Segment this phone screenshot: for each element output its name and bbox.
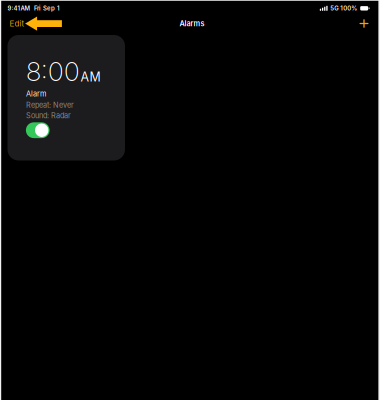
staticText: Alarms [179, 19, 204, 28]
staticText: 5G [330, 5, 338, 12]
staticText: 100% [340, 5, 357, 12]
staticText: Fri Sep 1 [34, 5, 60, 12]
staticText: AM [80, 69, 100, 84]
button[interactable]: Add alarm [355, 13, 372, 34]
button[interactable]: Alarm on [26, 120, 50, 138]
staticText: Sound: Radar [26, 111, 71, 120]
staticText: Edit [10, 19, 25, 28]
staticText: Alarm [26, 89, 46, 98]
button[interactable]: 8:00 [7, 35, 125, 160]
button[interactable]: Edit [6, 14, 29, 33]
staticText: Repeat: Never [26, 101, 74, 110]
staticText: 9:41AM [7, 5, 30, 12]
staticText: 8:00 [26, 56, 80, 87]
